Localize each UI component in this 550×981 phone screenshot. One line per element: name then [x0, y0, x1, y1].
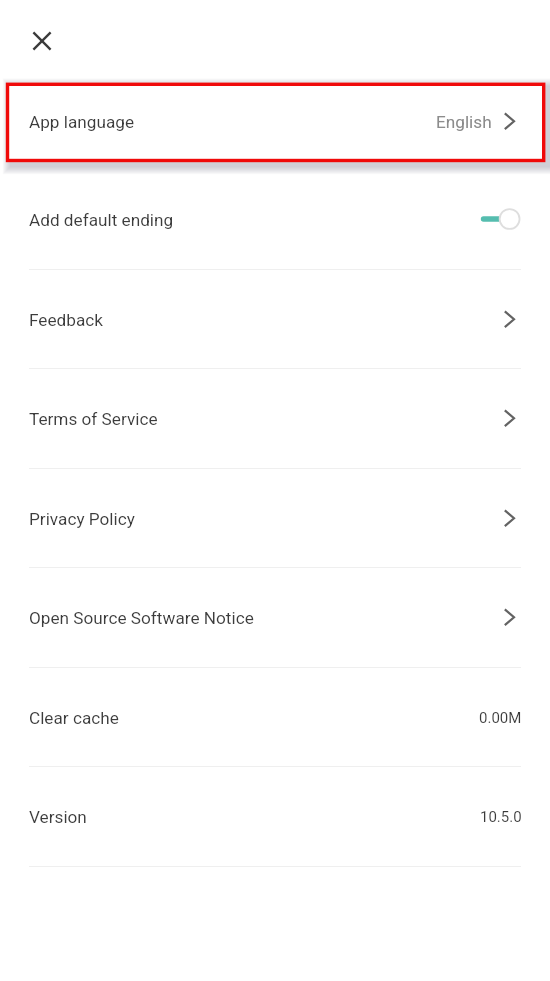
button[interactable]: Privacy Policy [0, 469, 550, 568]
button[interactable]: Feedback [0, 270, 550, 369]
button[interactable]: Open Source Software Notice [0, 568, 550, 668]
button[interactable]: Terms of Service [0, 369, 550, 469]
staticText: Clear cache [29, 708, 119, 728]
button[interactable]: Clear cache [0, 668, 550, 767]
button[interactable]: App language [0, 70, 550, 170]
staticText: Version [29, 807, 87, 827]
button[interactable]: Add default ending [482, 207, 522, 233]
staticText: Privacy Policy [29, 509, 135, 529]
staticText: Feedback [29, 310, 103, 330]
staticText: 10.5.0 [480, 808, 522, 826]
staticText: App language [29, 112, 135, 132]
staticText: 0.00M [479, 709, 522, 727]
button[interactable]: Close [22, 21, 62, 61]
staticText: Terms of Service [29, 409, 158, 429]
staticText: Add default ending [29, 210, 174, 230]
staticText: English [436, 112, 492, 132]
staticText: Open Source Software Notice [29, 608, 254, 628]
button[interactable]: Add default ending [0, 170, 550, 270]
button[interactable]: Version [0, 767, 550, 867]
